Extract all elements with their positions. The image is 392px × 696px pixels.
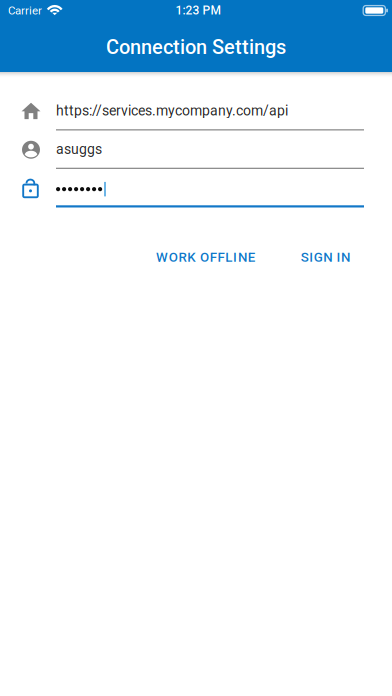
staticText: WORK OFFLINE	[156, 249, 256, 265]
staticText: 1:23 PM	[175, 3, 220, 18]
button[interactable]: Password	[0, 169, 392, 207]
button[interactable]: WORK OFFLINE	[142, 240, 270, 274]
staticText: SIGN IN	[301, 249, 350, 265]
button[interactable]: SIGN IN	[287, 240, 364, 274]
button[interactable]: Server address	[0, 92, 392, 130]
button[interactable]: User name	[0, 130, 392, 169]
staticText: asuggs	[56, 141, 102, 157]
staticText: Carrier	[8, 4, 42, 17]
staticText: https://services.mycompany.com/api	[56, 102, 288, 119]
staticText: Connection Settings	[106, 36, 286, 59]
